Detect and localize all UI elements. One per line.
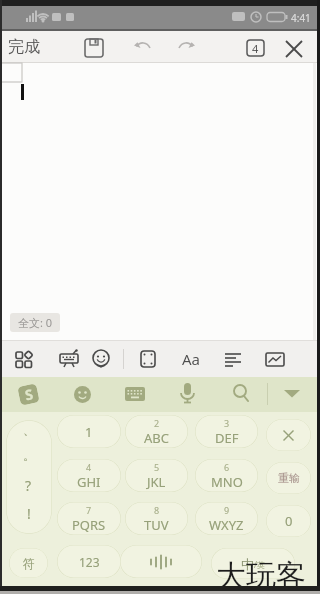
button[interactable]: 1 bbox=[57, 415, 121, 448]
staticText: WXYZ bbox=[209, 516, 244, 534]
staticText: 4 bbox=[252, 41, 259, 56]
staticText: 8 bbox=[154, 504, 160, 516]
button[interactable]: 2 bbox=[125, 415, 188, 448]
staticText: ? bbox=[25, 476, 32, 495]
staticText: JKL bbox=[147, 473, 166, 491]
staticText: MNO bbox=[211, 473, 243, 491]
staticText: /英 bbox=[254, 559, 265, 570]
staticText: Aa bbox=[182, 349, 201, 369]
staticText: ABC bbox=[144, 429, 169, 447]
staticText: 大玩客 bbox=[216, 557, 306, 594]
button[interactable]: 、 bbox=[6, 420, 52, 534]
staticText: 1 bbox=[85, 423, 93, 441]
button[interactable] bbox=[280, 383, 304, 405]
button[interactable] bbox=[13, 348, 35, 370]
button[interactable] bbox=[120, 545, 202, 578]
button[interactable] bbox=[231, 383, 251, 405]
button[interactable] bbox=[175, 40, 196, 56]
staticText: 全文: 0 bbox=[18, 315, 53, 330]
button[interactable]: 9 bbox=[195, 502, 258, 535]
button[interactable]: 4 bbox=[57, 459, 121, 492]
staticText: 7 bbox=[86, 504, 92, 516]
staticText: PQRS bbox=[72, 516, 106, 534]
button[interactable]: 3 bbox=[195, 415, 258, 448]
staticText: 123 bbox=[79, 554, 100, 570]
button[interactable] bbox=[125, 386, 146, 403]
button[interactable]: 中 bbox=[211, 548, 295, 579]
staticText: TUV bbox=[144, 516, 169, 534]
button[interactable]: 5 bbox=[125, 459, 188, 492]
staticText: DEF bbox=[215, 429, 239, 447]
button[interactable]: 7 bbox=[57, 502, 121, 535]
button[interactable] bbox=[266, 419, 311, 451]
button[interactable] bbox=[58, 348, 80, 370]
button[interactable] bbox=[133, 40, 154, 56]
button[interactable] bbox=[90, 348, 112, 370]
button[interactable] bbox=[72, 384, 93, 405]
staticText: 。 bbox=[23, 448, 35, 463]
staticText: 5 bbox=[154, 461, 160, 473]
staticText: 2 bbox=[154, 417, 160, 429]
button[interactable] bbox=[83, 37, 105, 59]
staticText: S bbox=[23, 384, 35, 404]
button[interactable] bbox=[284, 39, 304, 59]
staticText: 0 bbox=[285, 512, 293, 530]
staticText: 完成 bbox=[8, 37, 40, 57]
staticText: 、 bbox=[23, 422, 35, 437]
staticText: 3 bbox=[224, 417, 230, 429]
button[interactable]: 符 bbox=[9, 548, 48, 578]
staticText: 重输 bbox=[278, 471, 300, 485]
button[interactable] bbox=[137, 348, 159, 370]
button[interactable]: S bbox=[17, 383, 40, 406]
button[interactable] bbox=[178, 382, 197, 406]
button[interactable]: Aa bbox=[178, 346, 204, 372]
staticText: 中 bbox=[241, 556, 254, 572]
button[interactable]: 123 bbox=[57, 545, 121, 578]
staticText: 4 bbox=[86, 461, 92, 473]
staticText: 符 bbox=[23, 556, 35, 571]
button[interactable] bbox=[264, 348, 286, 370]
button[interactable]: 6 bbox=[195, 459, 258, 492]
button[interactable]: 完成 bbox=[5, 31, 43, 62]
button[interactable]: 0 bbox=[266, 505, 311, 537]
staticText: ! bbox=[27, 504, 31, 523]
button[interactable]: 重输 bbox=[266, 462, 311, 494]
button[interactable]: 8 bbox=[125, 502, 188, 535]
button[interactable] bbox=[222, 348, 244, 370]
staticText: GHI bbox=[77, 473, 101, 491]
button[interactable]: 4 bbox=[246, 39, 265, 57]
staticText: 6 bbox=[224, 461, 230, 473]
staticText: 9 bbox=[224, 504, 230, 516]
staticText: 4:41 bbox=[291, 11, 311, 25]
